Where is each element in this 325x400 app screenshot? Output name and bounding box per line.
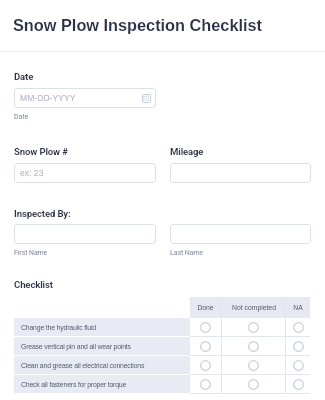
button[interactable]: Text field: [170, 163, 311, 183]
staticText: Clean and grease all electrical connecti…: [21, 362, 145, 370]
staticText: Date: [14, 113, 29, 121]
button[interactable]: Grease vertical pin and all wear points:…: [190, 337, 221, 356]
button[interactable]: MM-DD-YYYY: [14, 88, 156, 108]
staticText: Snow Plow Inspection Checklist: [13, 16, 263, 34]
staticText: Not completed: [232, 304, 276, 312]
staticText: ex: 23: [20, 168, 44, 178]
button[interactable]: Text field: [14, 224, 156, 244]
staticText: Date: [14, 71, 34, 82]
staticText: Checklist: [14, 279, 53, 290]
staticText: Snow Plow #: [14, 146, 68, 157]
button[interactable]: Grease vertical pin and all wear points:…: [222, 337, 285, 356]
staticText: NA: [293, 304, 303, 312]
button[interactable]: Check all fasteners for proper torque: N…: [222, 375, 285, 394]
button[interactable]: Clean and grease all electrical connecti…: [222, 356, 285, 375]
button[interactable]: Change the hydraulic fluid: Not complete…: [222, 318, 285, 337]
staticText: Mileage: [170, 146, 204, 157]
staticText: Last Name: [170, 249, 203, 257]
staticText: Check all fasteners for proper torque: [21, 381, 127, 389]
button[interactable]: Check all fasteners for proper torque: D…: [190, 375, 221, 394]
button[interactable]: Check all fasteners for proper torque: N…: [286, 375, 310, 394]
button[interactable]: ex: 23: [14, 163, 156, 183]
staticText: Change the hydraulic fluid: [21, 324, 96, 332]
button[interactable]: Grease vertical pin and all wear points:…: [286, 337, 310, 356]
staticText: Done: [197, 304, 214, 312]
staticText: Inspected By:: [14, 208, 71, 219]
button[interactable]: Clean and grease all electrical connecti…: [190, 356, 221, 375]
staticText: First Name: [14, 249, 48, 257]
button[interactable]: Text field: [170, 224, 311, 244]
staticText: MM-DD-YYYY: [20, 93, 76, 103]
staticText: Grease vertical pin and all wear points: [21, 343, 131, 351]
button[interactable]: Clean and grease all electrical connecti…: [286, 356, 310, 375]
button[interactable]: Change the hydraulic fluid: NA: [286, 318, 310, 337]
button[interactable]: Change the hydraulic fluid: Done: [190, 318, 221, 337]
